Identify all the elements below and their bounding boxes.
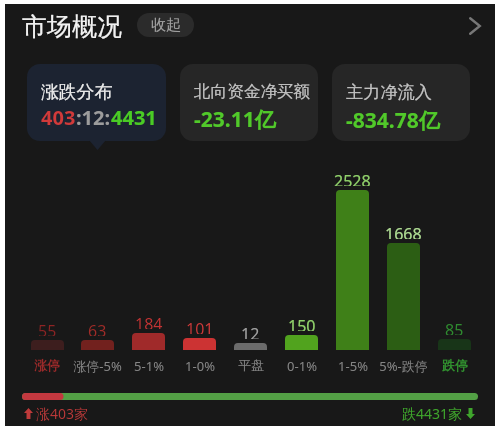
button[interactable]: 12 — [225, 157, 276, 373]
staticText: 5%-跌停 — [379, 357, 428, 373]
button[interactable] — [22, 393, 478, 400]
button[interactable]: 101 — [174, 157, 225, 373]
staticText: 55 — [38, 320, 57, 336]
button[interactable]: 涨403家 — [24, 404, 89, 422]
staticText: 平盘 — [238, 357, 264, 373]
staticText: 收起 — [151, 16, 181, 35]
staticText: 1668 — [385, 223, 422, 239]
staticText: 184 — [135, 313, 163, 329]
button[interactable]: 市场概况 — [22, 8, 122, 44]
staticText: 1-0% — [185, 357, 215, 373]
staticText: :12: — [76, 104, 111, 131]
button[interactable]: 55 — [22, 157, 72, 373]
staticText: 主力净流入 — [346, 81, 432, 103]
button[interactable]: 85 — [429, 157, 480, 373]
button[interactable]: 150 — [276, 157, 327, 373]
button[interactable]: 63 — [72, 157, 123, 373]
button[interactable]: 主力净流入 — [332, 64, 470, 141]
staticText: 5-1% — [134, 357, 164, 373]
button[interactable]: 1668 — [378, 157, 429, 373]
staticText: 涨403家 — [36, 404, 89, 422]
staticText: 涨停-5% — [73, 357, 122, 373]
staticText: 0-1% — [287, 357, 317, 373]
button[interactable]: 展开更多 — [458, 9, 492, 43]
staticText: 北向资金净买额 — [194, 81, 311, 102]
button[interactable]: 北向资金净买额 — [180, 64, 318, 141]
button[interactable]: 184 — [123, 157, 174, 373]
staticText: 150 — [288, 315, 316, 331]
staticText: 跌停 — [442, 357, 468, 373]
staticText: 涨停 — [34, 357, 60, 373]
button[interactable]: 收起 — [137, 13, 194, 37]
staticText: 涨跌分布 — [41, 81, 113, 103]
staticText: 101 — [186, 318, 214, 334]
staticText: -834.78亿 — [346, 106, 440, 135]
staticText: 63 — [88, 320, 107, 336]
staticText: 403 — [41, 104, 76, 131]
staticText: 2528 — [334, 170, 371, 186]
staticText: 跌4431家 — [402, 404, 463, 422]
button[interactable]: 2528 — [327, 157, 378, 373]
staticText: 12 — [241, 323, 260, 339]
button[interactable]: 跌4431家 — [397, 404, 475, 422]
staticText: -23.11亿 — [194, 105, 276, 134]
staticText: 1-5% — [338, 357, 368, 373]
button[interactable]: 涨跌分布 — [27, 64, 166, 141]
staticText: 4431 — [111, 104, 157, 131]
staticText: 85 — [445, 319, 464, 335]
staticText: 市场概况 — [22, 11, 122, 42]
